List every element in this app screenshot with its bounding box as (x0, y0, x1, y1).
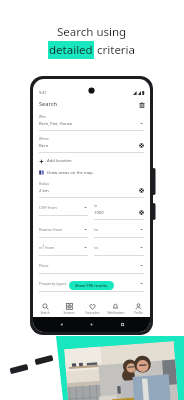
button[interactable]: Search (33, 301, 57, 317)
button[interactable]: Rooms from (39, 222, 88, 240)
staticText: Property types (39, 281, 67, 286)
button[interactable]: Floor (39, 258, 144, 276)
staticText: Notifications (107, 311, 125, 315)
staticText: 1000 (94, 210, 104, 216)
button[interactable]: Favourites (81, 301, 104, 317)
other: Home (89, 322, 94, 327)
button[interactable]: to (94, 200, 144, 222)
other: Recents (120, 322, 125, 327)
staticText: criteria (94, 42, 136, 58)
staticText: to (94, 245, 98, 250)
button[interactable]: m² from (39, 240, 88, 258)
staticText: Search (40, 311, 50, 315)
staticText: Draw areas on the map (47, 170, 93, 176)
button[interactable]: Radius (39, 178, 144, 200)
staticText: detailed (49, 42, 93, 58)
button[interactable]: Notifications (104, 301, 127, 317)
staticText: 9:41 (39, 90, 47, 95)
staticText: Floor (39, 263, 49, 268)
button[interactable]: Delete search (137, 100, 146, 109)
button[interactable]: to (94, 240, 144, 258)
staticText: Services (63, 311, 75, 315)
staticText: Favourites (85, 311, 100, 315)
staticText: Search using (57, 24, 127, 40)
staticText: Bern (39, 143, 49, 149)
staticText: to (94, 204, 98, 208)
button[interactable]: Who (39, 111, 144, 133)
staticText: Rent, Flat, House (39, 121, 73, 127)
staticText: Rooms from (39, 227, 63, 232)
button[interactable]: Draw areas on the map (39, 167, 144, 178)
other: Back (59, 322, 64, 327)
staticText: 2 km (39, 188, 49, 194)
button[interactable]: Add location (39, 155, 144, 167)
button[interactable]: CHF from (39, 200, 88, 218)
staticText: Add location (47, 158, 72, 164)
button[interactable]: Profile (127, 301, 150, 317)
button[interactable]: to (94, 222, 144, 240)
staticText: to (94, 227, 98, 232)
staticText: CHF from (39, 205, 57, 210)
staticText: Profile (134, 311, 143, 315)
button[interactable]: Property types (39, 276, 144, 294)
staticText: m² from (39, 245, 55, 250)
staticText: Radius (39, 182, 50, 186)
staticText: Where (39, 137, 49, 141)
staticText: Show 996 results (75, 283, 108, 288)
staticText: Search (39, 100, 57, 108)
button[interactable]: Services (57, 301, 81, 317)
staticText: Who (39, 115, 46, 119)
button[interactable]: Show 996 results (69, 281, 114, 290)
button[interactable]: Where (39, 133, 144, 155)
